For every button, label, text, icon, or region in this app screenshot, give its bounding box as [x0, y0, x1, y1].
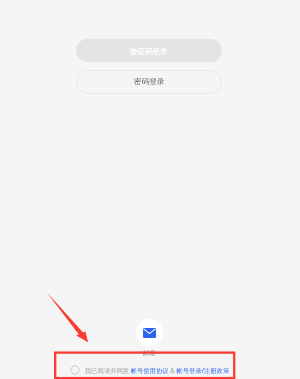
button[interactable]: 验证码登录 — [76, 39, 222, 62]
staticText: 验证码登录 — [130, 47, 168, 56]
button[interactable]: 密码登录 — [76, 70, 222, 94]
staticText: 密码登录 — [134, 77, 165, 87]
button[interactable]: 我已阅读并同意 帐号使用协议 & 帐号登录/注册政策 — [70, 365, 230, 375]
button[interactable]: 邮箱登录 — [136, 319, 163, 357]
staticText: 我已阅读并同意 帐号使用协议 & 帐号登录/注册政策 — [85, 366, 230, 375]
staticText: 邮箱 — [143, 349, 156, 357]
